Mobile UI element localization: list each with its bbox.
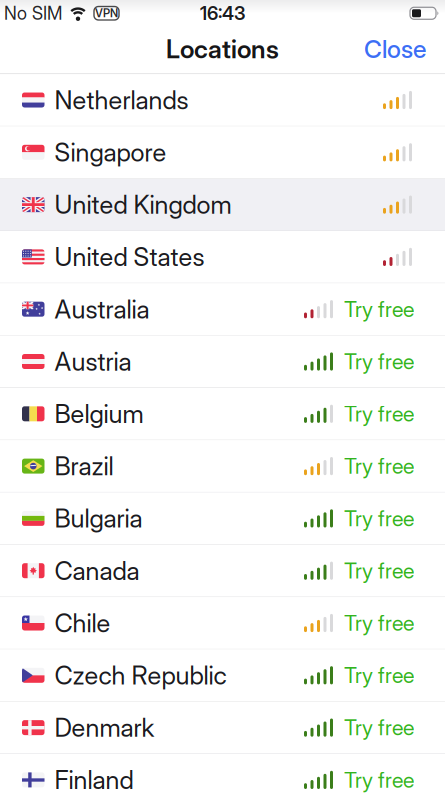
button[interactable]: Czech Republic [0, 649, 445, 702]
staticText: Finland [54, 765, 133, 794]
button[interactable]: Denmark [0, 702, 445, 754]
staticText: Chile [54, 608, 110, 638]
staticText: Austria [54, 346, 131, 377]
staticText: 16:43 [200, 2, 245, 25]
staticText: Denmark [54, 712, 154, 743]
staticText: Netherlands [54, 85, 188, 115]
button[interactable]: Singapore [0, 126, 445, 179]
staticText: Belgium [54, 398, 143, 429]
staticText: Close [364, 34, 426, 64]
staticText: Locations [166, 34, 279, 64]
staticText: United States [54, 242, 204, 272]
button[interactable]: Bulgaria [0, 493, 445, 545]
button[interactable]: United Kingdom [0, 179, 445, 231]
staticText: Canada [54, 555, 139, 586]
staticText: Try free [344, 662, 414, 688]
staticText: Try free [344, 401, 414, 427]
staticText: VPN [95, 6, 118, 20]
staticText: Australia [54, 294, 149, 325]
button[interactable]: Belgium [0, 388, 445, 440]
staticText: Czech Republic [54, 660, 226, 691]
staticText: No SIM [4, 2, 62, 24]
button[interactable]: Finland [0, 754, 445, 794]
staticText: Try free [344, 610, 414, 636]
button[interactable]: Brazil [0, 440, 445, 493]
staticText: Try free [344, 558, 414, 584]
staticText: Try free [344, 767, 414, 793]
staticText: Try free [344, 453, 414, 479]
staticText: United Kingdom [54, 189, 231, 220]
staticText: Try free [344, 715, 414, 740]
staticText: Try free [344, 505, 414, 531]
button[interactable]: United States [0, 231, 445, 283]
staticText: Try free [344, 296, 414, 322]
staticText: Brazil [54, 451, 113, 481]
button[interactable]: Austria [0, 336, 445, 388]
button[interactable]: Canada [0, 545, 445, 597]
button[interactable]: Chile [0, 597, 445, 649]
staticText: Try free [344, 349, 414, 374]
button[interactable]: Australia [0, 283, 445, 336]
button[interactable]: Netherlands [0, 74, 445, 126]
button[interactable]: Close [352, 24, 445, 74]
staticText: Bulgaria [54, 503, 142, 534]
staticText: Singapore [54, 137, 166, 168]
